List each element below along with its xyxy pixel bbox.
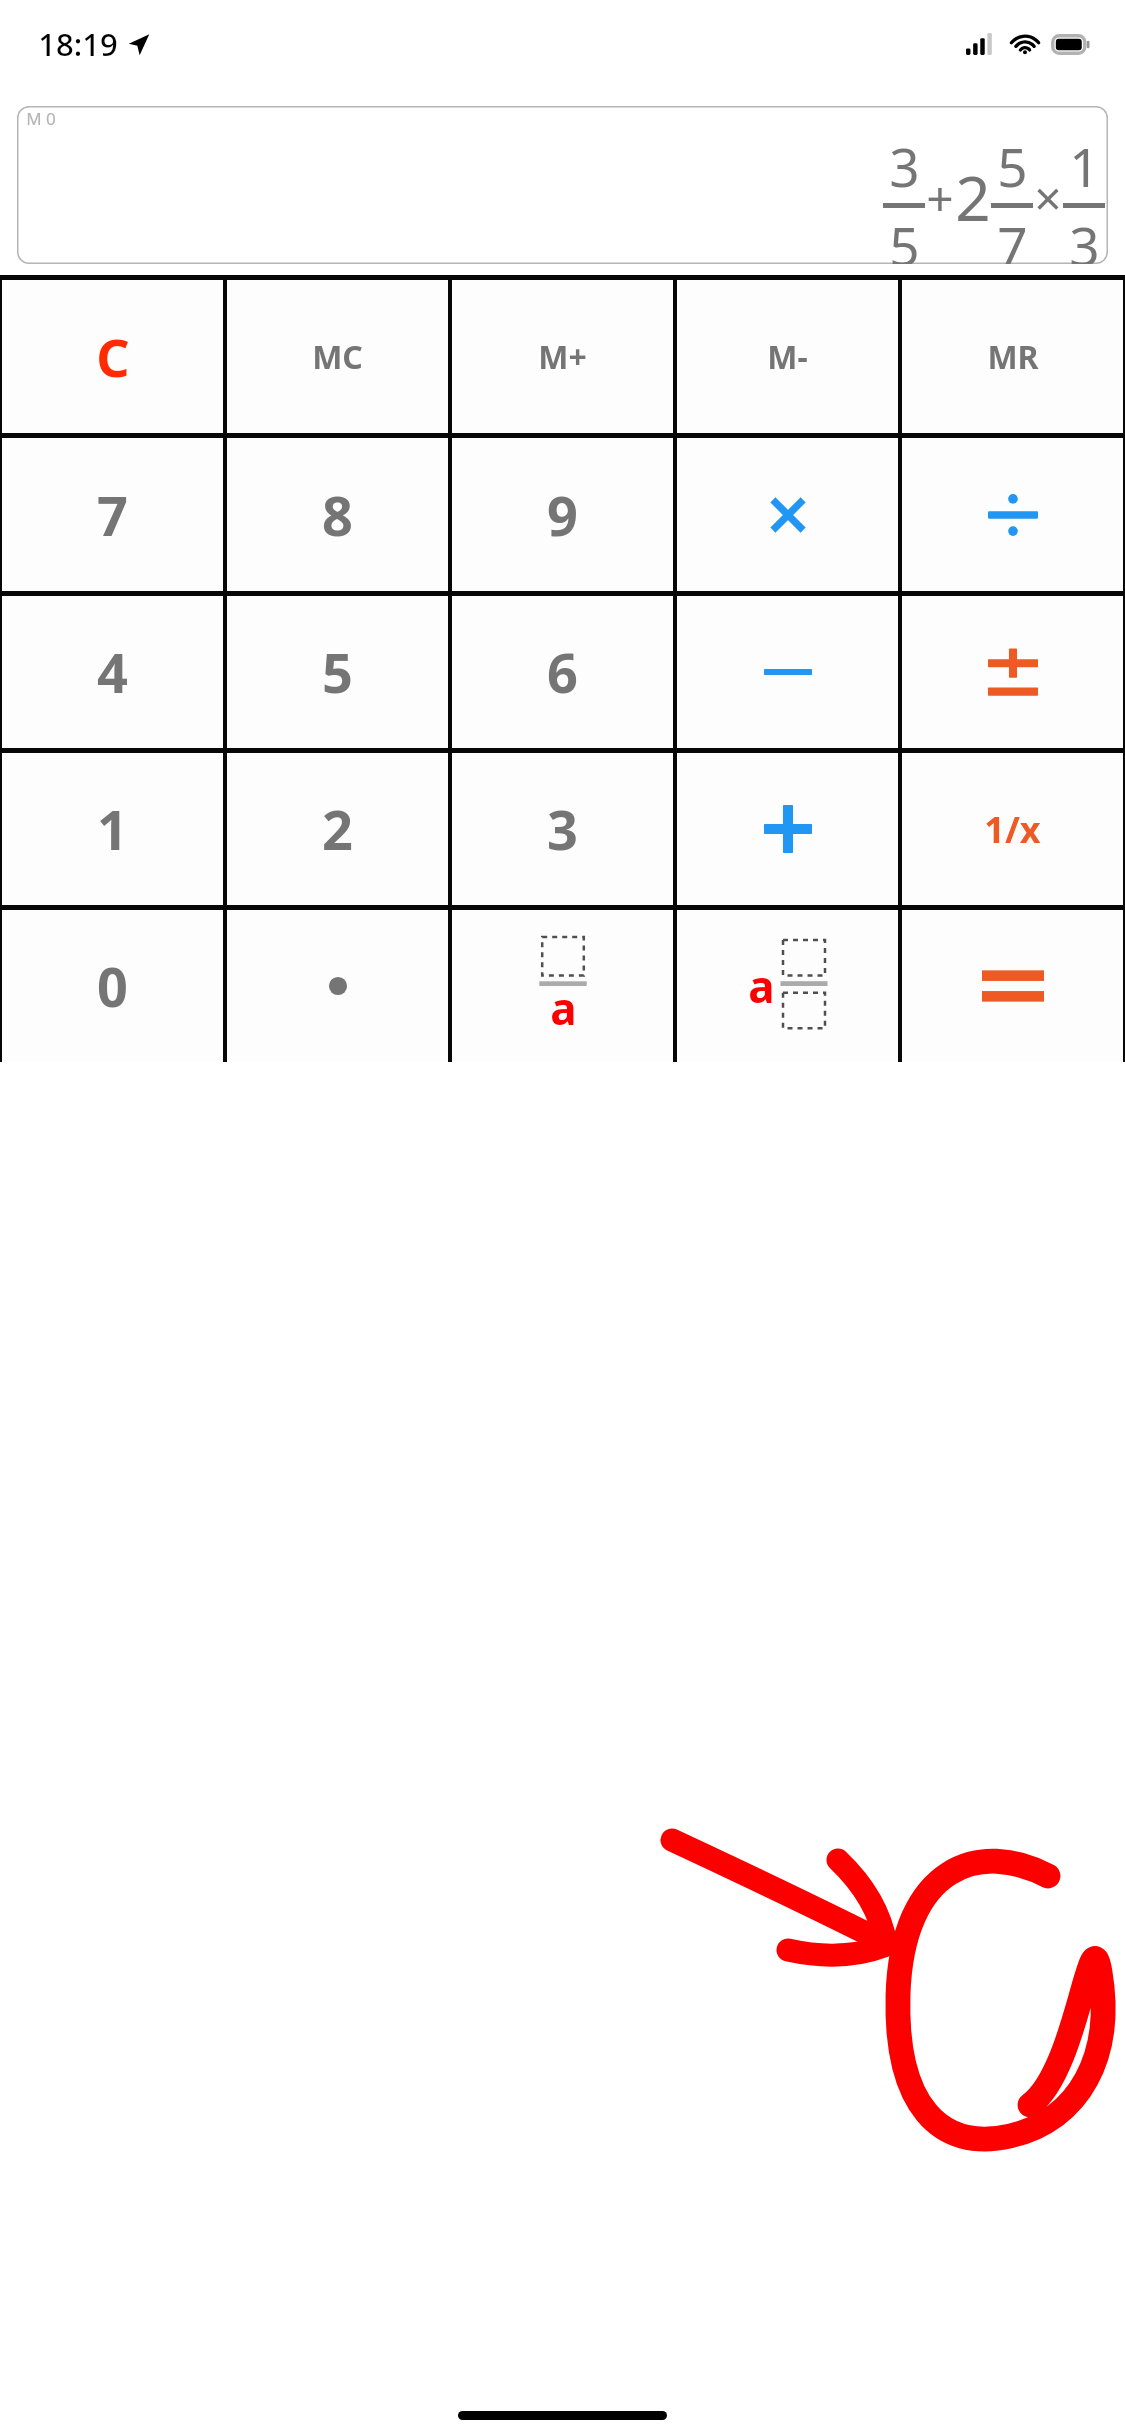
staticText: M-	[767, 335, 808, 379]
staticText: a	[550, 978, 577, 1038]
button[interactable]: MC	[227, 280, 448, 433]
staticText: 3	[1069, 209, 1100, 264]
button[interactable]: Plus minus	[902, 596, 1123, 748]
button[interactable]: 3	[452, 753, 673, 905]
staticText: +	[926, 165, 954, 230]
other: Fraction template	[523, 934, 603, 1038]
other: Decimal point	[328, 976, 348, 996]
button[interactable]: M-	[677, 280, 898, 433]
button[interactable]: Equals	[902, 910, 1123, 1062]
staticText: M+	[538, 335, 587, 379]
staticText: M 0	[26, 107, 56, 130]
staticText: 5	[322, 635, 353, 709]
button[interactable]: 8	[227, 438, 448, 591]
button[interactable]: 2	[227, 753, 448, 905]
button[interactable]: 1	[2, 753, 223, 905]
staticText: 3	[889, 130, 920, 202]
button[interactable]: Decimal point	[227, 910, 448, 1062]
button[interactable]: Mixed fraction template	[677, 910, 898, 1062]
button[interactable]: 6	[452, 596, 673, 748]
other: Mixed fraction template	[732, 934, 844, 1038]
button[interactable]: Minus	[677, 596, 898, 748]
staticText: C	[96, 321, 130, 392]
other: Equals	[982, 963, 1044, 1009]
staticText: 0	[97, 949, 128, 1023]
button[interactable]: 0	[2, 910, 223, 1062]
staticText: a	[748, 956, 775, 1016]
button[interactable]: M 0	[17, 106, 1108, 264]
staticText: 1	[97, 792, 128, 866]
button[interactable]: MR	[902, 280, 1123, 433]
other: Divide	[988, 492, 1038, 538]
staticText: 4	[97, 635, 128, 709]
staticText: 5	[997, 130, 1028, 202]
other: Plus minus	[988, 646, 1038, 698]
staticText: 9	[547, 478, 578, 552]
other: Multiply	[767, 494, 809, 536]
button[interactable]: Fraction template	[452, 910, 673, 1062]
staticText: 3	[547, 792, 578, 866]
staticText: 2	[322, 792, 353, 866]
staticText: 1	[1069, 130, 1100, 202]
staticText: 5	[889, 209, 920, 264]
button[interactable]: 4	[2, 596, 223, 748]
button[interactable]: Plus	[677, 753, 898, 905]
button[interactable]: Divide	[902, 438, 1123, 591]
button[interactable]: 5	[227, 596, 448, 748]
staticText: MR	[987, 335, 1039, 379]
button[interactable]: 9	[452, 438, 673, 591]
staticText: 8	[322, 478, 353, 552]
staticText: MC	[312, 335, 363, 379]
button[interactable]: Multiply	[677, 438, 898, 591]
staticText: 18:19	[38, 23, 118, 65]
button[interactable]: C	[2, 280, 223, 433]
other: Plus	[764, 805, 812, 853]
button[interactable]: M+	[452, 280, 673, 433]
button[interactable]: 7	[2, 438, 223, 591]
staticText: ×	[1034, 165, 1062, 230]
staticText: 1/x	[984, 805, 1041, 854]
staticText: 6	[547, 635, 578, 709]
staticText: 7	[997, 209, 1028, 264]
button[interactable]: 1/x	[902, 753, 1123, 905]
other: Minus	[764, 649, 812, 695]
staticText: 2	[955, 155, 991, 239]
staticText: 7	[97, 478, 128, 552]
